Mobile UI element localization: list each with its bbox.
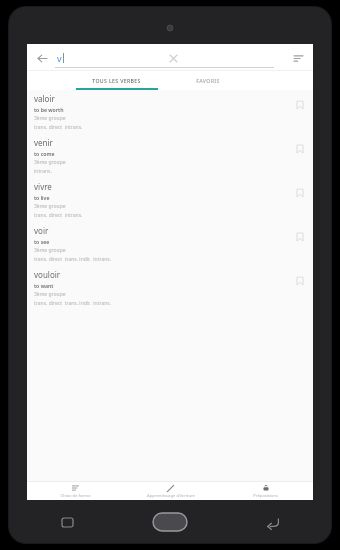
staticText: to see	[34, 238, 50, 245]
staticText: to be worth	[34, 106, 64, 113]
staticText: trans. direct trans. indir. intrans.	[34, 256, 112, 263]
staticText: to live	[34, 194, 50, 201]
button[interactable]: Home	[153, 513, 187, 531]
button[interactable]: Back	[262, 511, 284, 533]
button[interactable]: Choix de forme	[27, 482, 123, 500]
button[interactable]: vivre	[27, 178, 313, 222]
staticText: v	[57, 52, 62, 64]
staticText: trans. direct intrans.	[34, 212, 83, 219]
button[interactable]: Prépositions	[218, 482, 313, 500]
button[interactable]: voir	[27, 222, 313, 266]
button[interactable]: Back	[33, 49, 51, 67]
button[interactable]: venir	[27, 134, 313, 178]
staticText: Choix de forme	[60, 493, 91, 499]
staticText: vouloir	[34, 269, 61, 280]
button[interactable]: Apprentissage d'écriture	[123, 482, 218, 500]
button[interactable]: Add to favourites	[293, 274, 307, 288]
button[interactable]: TOUS LES VERBES	[72, 71, 161, 90]
staticText: Prépositions	[253, 493, 278, 499]
staticText: TOUS LES VERBES	[92, 77, 141, 84]
staticText: 3ème groupe	[34, 159, 66, 166]
staticText: trans. direct trans. indir. intrans.	[34, 300, 112, 307]
button[interactable]: Add to favourites	[293, 142, 307, 156]
button[interactable]: Add to favourites	[293, 186, 307, 200]
button[interactable]: Clear search	[166, 51, 180, 65]
staticText: 3ème groupe	[34, 291, 66, 298]
staticText: 3ème groupe	[34, 203, 66, 210]
button[interactable]: Sort	[289, 49, 307, 67]
staticText: venir	[34, 137, 53, 148]
staticText: to want	[34, 282, 54, 289]
button[interactable]: vouloir	[27, 266, 313, 310]
staticText: intrans.	[34, 168, 52, 175]
staticText: Apprentissage d'écriture	[147, 493, 195, 499]
button[interactable]: Recents	[56, 511, 78, 533]
button[interactable]: valoir	[27, 90, 313, 134]
staticText: valoir	[34, 93, 55, 104]
staticText: trans. direct intrans.	[34, 124, 83, 131]
button[interactable]: Add to favourites	[293, 230, 307, 244]
staticText: voir	[34, 225, 49, 236]
button[interactable]: v	[55, 44, 283, 71]
staticText: vivre	[34, 181, 52, 192]
staticText: FAVORIS	[196, 77, 220, 84]
staticText: 3ème groupe	[34, 115, 66, 122]
button[interactable]: FAVORIS	[175, 71, 240, 90]
button[interactable]: Add to favourites	[293, 98, 307, 112]
staticText: to come	[34, 150, 55, 157]
staticText: 3ème groupe	[34, 247, 66, 254]
